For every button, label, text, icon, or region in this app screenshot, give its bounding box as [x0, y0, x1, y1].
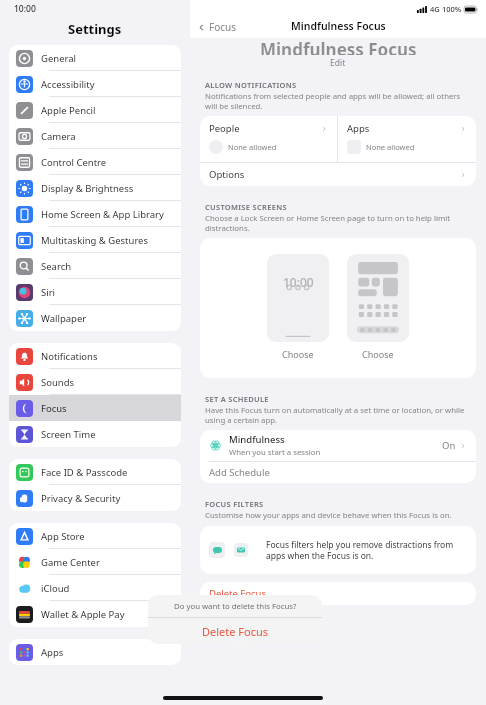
- button[interactable]: Focus: [9, 395, 181, 421]
- staticText: 4G: [430, 4, 440, 14]
- staticText: Search: [41, 260, 72, 273]
- staticText: iCloud: [41, 582, 70, 595]
- button[interactable]: Wallpaper: [9, 305, 181, 331]
- staticText: Display & Brightness: [41, 182, 134, 195]
- button[interactable]: People: [200, 116, 337, 162]
- staticText: Delete Focus: [209, 587, 267, 600]
- staticText: Choose: [282, 348, 314, 360]
- staticText: Home Screen & App Library: [41, 208, 164, 221]
- button[interactable]: Accessibility: [9, 71, 181, 97]
- staticText: Face ID & Passcode: [41, 466, 128, 479]
- button[interactable]: Control Centre: [9, 149, 181, 175]
- button[interactable]: Apps: [9, 639, 181, 665]
- staticText: Edit: [330, 57, 346, 69]
- staticText: When you start a session: [229, 447, 321, 458]
- staticText: Mindfulness Focus: [260, 38, 417, 55]
- staticText: Mindfulness: [229, 433, 285, 446]
- staticText: Choose a Lock Screen or Home Screen page…: [205, 213, 471, 233]
- staticText: SET A SCHEDULE: [205, 394, 269, 404]
- button[interactable]: Wallet & Apple Pay: [9, 601, 181, 627]
- staticText: Options: [209, 168, 245, 181]
- staticText: Accessibility: [41, 78, 95, 91]
- staticText: Delete Focus: [202, 624, 269, 639]
- button[interactable]: Apple Pencil: [9, 97, 181, 123]
- button[interactable]: Apps: [338, 116, 476, 162]
- button[interactable]: Display & Brightness: [9, 175, 181, 201]
- staticText: Wallet & Apple Pay: [41, 608, 125, 621]
- button[interactable]: Camera: [9, 123, 181, 149]
- staticText: Choose: [362, 348, 394, 360]
- staticText: None allowed: [228, 142, 277, 152]
- button[interactable]: Options: [200, 163, 476, 186]
- staticText: Add Schedule: [209, 466, 270, 479]
- staticText: Wallpaper: [41, 312, 87, 325]
- staticText: Notifications: [41, 350, 98, 363]
- button[interactable]: App Store: [9, 523, 181, 549]
- button[interactable]: Delete Focus: [148, 618, 322, 644]
- staticText: 100%: [442, 4, 462, 14]
- button[interactable]: Delete Focus: [200, 582, 476, 605]
- staticText: 10:00: [14, 3, 36, 15]
- button[interactable]: Sounds: [9, 369, 181, 395]
- button[interactable]: Mindfulness: [200, 430, 476, 461]
- staticText: App Store: [41, 530, 85, 543]
- button[interactable]: Notifications: [9, 343, 181, 369]
- button[interactable]: Home Screen & App Library: [9, 201, 181, 227]
- staticText: Apple Pencil: [41, 104, 96, 117]
- staticText: General: [41, 52, 77, 65]
- staticText: Privacy & Security: [41, 492, 121, 505]
- button[interactable]: Choose Home Screen: [347, 254, 409, 342]
- button[interactable]: Face ID & Passcode: [9, 459, 181, 485]
- staticText: On: [442, 439, 456, 452]
- staticText: Do you want to delete this Focus?: [174, 601, 297, 612]
- staticText: Notifications from selected people and a…: [205, 91, 471, 111]
- staticText: Control Centre: [41, 156, 107, 169]
- button[interactable]: Siri: [9, 279, 181, 305]
- staticText: Apps: [41, 646, 64, 659]
- button[interactable]: Add Schedule: [200, 462, 476, 483]
- button[interactable]: Search: [9, 253, 181, 279]
- staticText: Camera: [41, 130, 76, 143]
- staticText: Apps: [347, 122, 370, 135]
- staticText: Settings: [68, 20, 122, 38]
- button[interactable]: Multitasking & Gestures: [9, 227, 181, 253]
- staticText: Multitasking & Gestures: [41, 234, 149, 247]
- staticText: None allowed: [366, 142, 415, 152]
- staticText: Siri: [41, 286, 56, 299]
- staticText: Customise how your apps and device behav…: [205, 510, 452, 521]
- button[interactable]: Game Center: [9, 549, 181, 575]
- staticText: Have this Focus turn on automatically at…: [205, 405, 471, 425]
- staticText: Mindfulness Focus: [291, 19, 386, 33]
- button[interactable]: Screen Time: [9, 421, 181, 447]
- staticText: Game Center: [41, 556, 100, 569]
- staticText: Focus filters help you remove distractio…: [266, 539, 467, 561]
- button[interactable]: Focus: [196, 20, 237, 34]
- staticText: Screen Time: [41, 428, 96, 441]
- staticText: FOCUS FILTERS: [205, 499, 264, 509]
- staticText: Focus: [209, 20, 237, 34]
- staticText: 10:00: [283, 274, 314, 290]
- staticText: Sounds: [41, 376, 75, 389]
- staticText: People: [209, 122, 240, 135]
- staticText: CUSTOMISE SCREENS: [205, 202, 287, 212]
- button[interactable]: Privacy & Security: [9, 485, 181, 511]
- button[interactable]: General: [9, 45, 181, 71]
- staticText: ALLOW NOTIFICATIONS: [205, 80, 297, 90]
- staticText: Focus: [41, 402, 67, 415]
- button[interactable]: iCloud: [9, 575, 181, 601]
- button[interactable]: Choose Lock Screen: [267, 254, 329, 342]
